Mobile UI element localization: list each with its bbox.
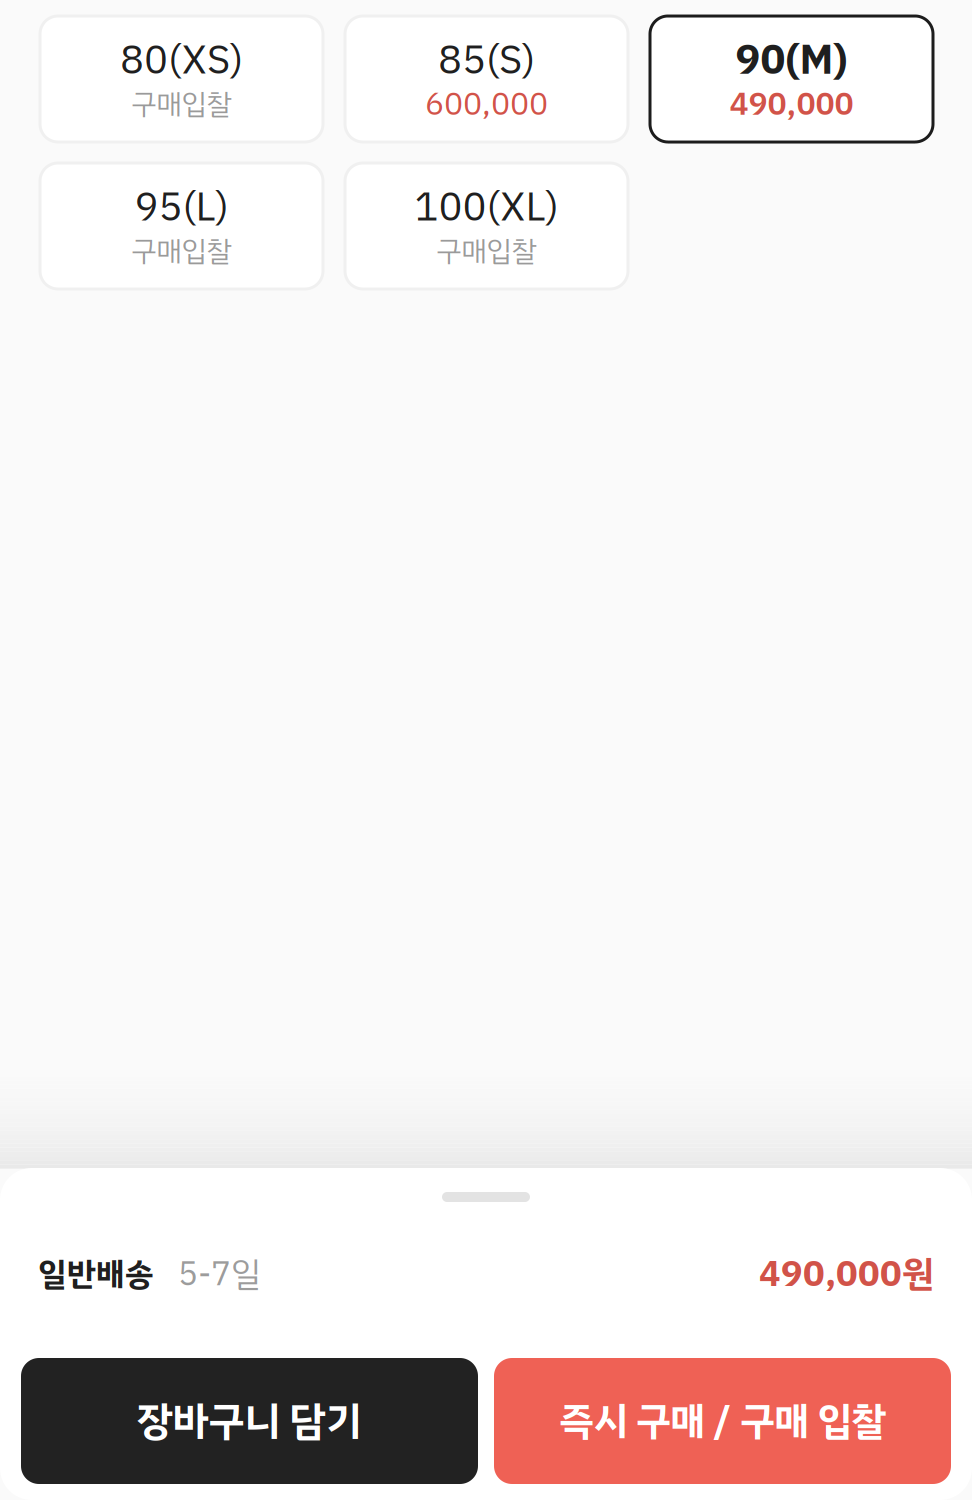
staticText: 즉시 구매 / 구매 입찰 (559, 1392, 885, 1450)
staticText: 장바구니 담기 (137, 1391, 362, 1451)
staticText: 600,000 (425, 80, 548, 128)
staticText: 490,000 (729, 80, 853, 128)
staticText: 490,000원 (759, 1247, 934, 1301)
staticText: 85(S) (438, 30, 535, 90)
button[interactable]: 100(XL) (345, 163, 628, 289)
button[interactable]: 즉시 구매 / 구매 입찰 (494, 1358, 951, 1484)
button[interactable]: 90(M) (650, 16, 933, 142)
button[interactable]: 95(L) (40, 163, 323, 289)
staticText: 구매입찰 (131, 83, 231, 125)
staticText: 일반배송 (38, 1250, 154, 1298)
staticText: 95(L) (134, 177, 228, 237)
staticText: 구매입찰 (131, 230, 231, 272)
staticText: 80(XS) (120, 30, 243, 90)
button[interactable]: 80(XS) (40, 16, 323, 142)
staticText: 90(M) (735, 29, 847, 91)
staticText: 100(XL) (414, 177, 558, 237)
staticText: 5-7일 (154, 1249, 261, 1299)
staticText: 구매입찰 (436, 230, 536, 272)
button[interactable]: 85(S) (345, 16, 628, 142)
button[interactable]: 장바구니 담기 (21, 1358, 478, 1484)
